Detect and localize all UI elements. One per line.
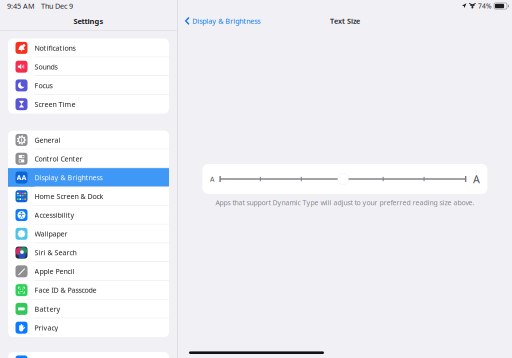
staticText: Accessibility	[34, 210, 74, 220]
staticText: 74%	[478, 2, 492, 10]
staticText: Apps that support Dynamic Type will adju…	[215, 198, 474, 207]
staticText: Focus	[34, 81, 52, 90]
button[interactable]: App Store	[8, 352, 169, 358]
button[interactable]: Display & Brightness	[178, 12, 266, 30]
button[interactable]: Privacy	[8, 318, 169, 337]
button[interactable]: Home Screen & Dock	[8, 187, 169, 206]
button[interactable]: Battery	[8, 299, 169, 318]
staticText: Text Size	[330, 16, 360, 26]
staticText: General	[34, 135, 60, 145]
staticText: Sounds	[34, 62, 57, 71]
button[interactable]: Siri & Search	[8, 243, 169, 262]
button[interactable]: General	[8, 131, 169, 149]
staticText: Privacy	[34, 323, 58, 332]
staticText: Screen Time	[34, 99, 75, 109]
button[interactable]: Sounds	[8, 57, 169, 76]
staticText: Display & Brightness	[192, 16, 260, 26]
button[interactable]: Accessibility	[8, 206, 169, 224]
button[interactable]: Wallpaper	[8, 224, 169, 243]
staticText: Notifications	[34, 43, 75, 53]
button[interactable]: Control Center	[8, 149, 169, 168]
button[interactable]: Notifications	[8, 38, 169, 57]
staticText: Settings	[73, 16, 103, 26]
staticText: Battery	[34, 304, 60, 314]
staticText: Face ID & Passcode	[34, 285, 96, 295]
button[interactable]: Focus	[8, 76, 169, 95]
staticText: Thu Dec 9	[41, 1, 73, 11]
staticText: Wallpaper	[34, 229, 67, 238]
staticText: Siri & Search	[34, 248, 76, 257]
staticText: AA	[16, 173, 26, 182]
button[interactable]: AA	[8, 168, 169, 187]
staticText: Display & Brightness	[34, 173, 102, 182]
staticText: Home Screen & Dock	[34, 192, 103, 201]
staticText: 9:45 AM	[7, 1, 35, 11]
button[interactable]: Face ID & Passcode	[8, 281, 169, 299]
staticText: Apple Pencil	[34, 267, 74, 276]
button[interactable]: Screen Time	[8, 95, 169, 114]
staticText: A	[473, 172, 480, 186]
staticText: Control Center	[34, 154, 82, 163]
staticText: A	[210, 174, 214, 184]
button[interactable]: Apple Pencil	[8, 262, 169, 281]
